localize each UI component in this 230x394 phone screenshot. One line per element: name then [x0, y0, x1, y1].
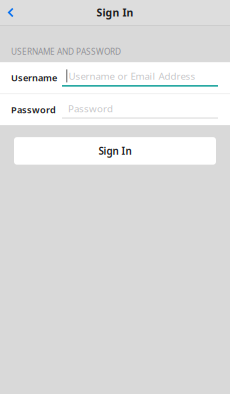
staticText: Sign In	[98, 144, 131, 158]
button[interactable]: Sign In	[14, 137, 216, 165]
staticText: Password	[11, 103, 56, 116]
button[interactable]: Back	[0, 0, 26, 25]
staticText: Username or Email Address	[69, 69, 196, 83]
staticText: Username	[11, 71, 57, 84]
staticText: Sign In	[96, 5, 133, 20]
staticText: Password	[68, 102, 113, 115]
staticText: USERNAME AND PASSWORD	[11, 46, 121, 57]
